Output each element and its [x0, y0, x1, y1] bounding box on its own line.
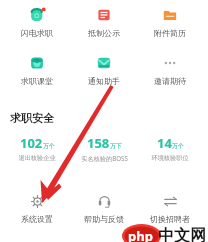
- staticText: 实名核验的BOSS: [81, 154, 128, 162]
- staticText: 通知助手: [88, 76, 120, 86]
- button[interactable]: 帮助与反馈: [73, 191, 135, 224]
- staticText: 切换招聘者: [150, 214, 190, 224]
- button[interactable]: 抵制公示: [73, 4, 135, 38]
- button[interactable]: 158: [70, 134, 138, 162]
- button[interactable]: 切换招聘者: [139, 191, 201, 224]
- staticText: 抵制公示: [88, 28, 120, 38]
- button[interactable]: 14: [136, 134, 204, 162]
- staticText: 万下: [110, 142, 122, 150]
- staticText: 求职安全: [10, 111, 54, 125]
- button[interactable]: 附件简历: [139, 4, 201, 38]
- staticText: 万个: [172, 142, 184, 150]
- staticText: 闪电求职: [21, 28, 53, 38]
- staticText: 附件简历: [154, 28, 186, 38]
- button[interactable]: 求职课堂: [6, 52, 68, 86]
- staticText: 邀请期待: [154, 76, 186, 86]
- staticText: 帮助与反馈: [84, 214, 124, 224]
- staticText: 环境核验职位: [151, 154, 189, 162]
- staticText: 万个: [43, 142, 55, 150]
- button[interactable]: 102: [3, 134, 71, 162]
- staticText: 102: [20, 134, 43, 152]
- staticText: 158: [87, 134, 110, 152]
- staticText: 14: [157, 134, 172, 152]
- staticText: 中文网: [158, 226, 206, 242]
- button[interactable]: 邀请期待: [139, 52, 201, 86]
- button[interactable]: 通知助手: [73, 52, 135, 86]
- staticText: php: [128, 227, 153, 242]
- button[interactable]: 系统设置: [6, 191, 68, 224]
- staticText: 求职课堂: [21, 76, 53, 86]
- button[interactable]: 闪电求职: [6, 4, 68, 38]
- staticText: 系统设置: [21, 214, 53, 224]
- staticText: 退出核验企业: [18, 154, 56, 162]
